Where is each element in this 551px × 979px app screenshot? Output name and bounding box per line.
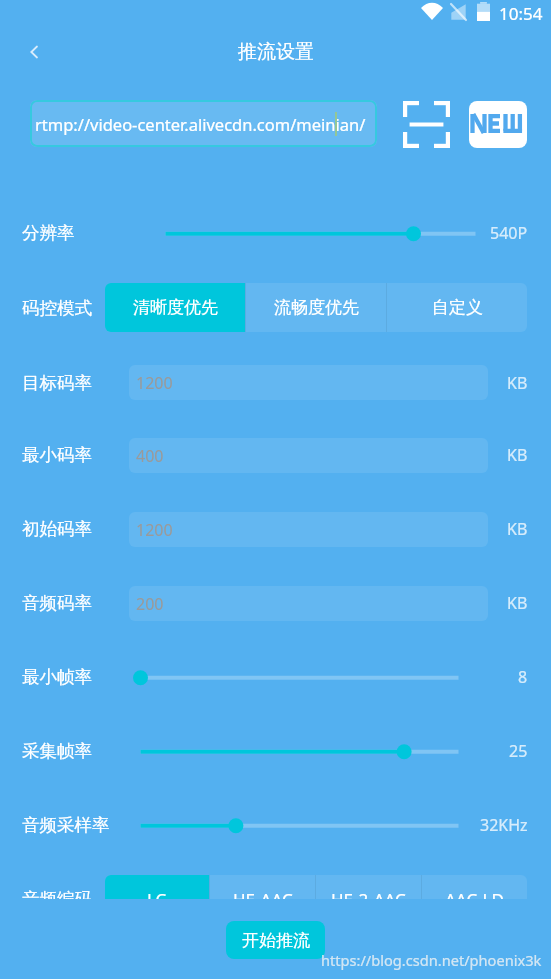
staticText: 开始推流 bbox=[242, 930, 310, 951]
staticText: 最小帧率 bbox=[22, 666, 92, 688]
button[interactable]: rtmp://video-center.alivecdn.com/meinian… bbox=[30, 100, 377, 147]
button[interactable]: LC bbox=[105, 875, 209, 899]
staticText: 采集帧率 bbox=[22, 740, 92, 762]
button[interactable]: 400 bbox=[129, 438, 488, 473]
staticText: 推流设置 bbox=[238, 40, 314, 64]
button[interactable]: Slider bbox=[158, 219, 483, 247]
staticText: 初始码率 bbox=[22, 518, 92, 540]
button[interactable]: 1200 bbox=[129, 512, 488, 547]
staticText: rtmp://video-center.alivecdn.com/meinian… bbox=[35, 113, 366, 135]
staticText: 200 bbox=[136, 593, 164, 615]
staticText: KB bbox=[507, 444, 528, 466]
staticText: 400 bbox=[136, 445, 164, 467]
button[interactable]: HE-AAC bbox=[210, 875, 315, 899]
staticText: AAC-LD bbox=[445, 888, 504, 899]
staticText: 32KHz bbox=[480, 814, 528, 836]
staticText: 码控模式 bbox=[22, 297, 92, 319]
button[interactable]: Slider bbox=[133, 811, 466, 839]
staticText: 自定义 bbox=[432, 297, 483, 318]
staticText: KB bbox=[507, 592, 528, 614]
staticText: 清晰度优先 bbox=[133, 297, 218, 318]
button[interactable]: New bbox=[469, 101, 527, 148]
button[interactable]: 流畅度优先 bbox=[246, 283, 386, 332]
button[interactable]: HE-2-AAC bbox=[316, 875, 421, 899]
button[interactable]: 1200 bbox=[129, 365, 488, 400]
staticText: 音频采样率 bbox=[22, 814, 110, 836]
staticText: https://blog.csdn.net/phoenix3k bbox=[321, 950, 542, 970]
button[interactable]: 200 bbox=[129, 586, 488, 621]
button[interactable]: 清晰度优先 bbox=[105, 283, 245, 332]
staticText: LC bbox=[147, 888, 167, 899]
staticText: 流畅度优先 bbox=[274, 297, 359, 318]
button[interactable]: Scan QR code bbox=[403, 101, 450, 148]
staticText: 音频码率 bbox=[22, 592, 92, 614]
staticText: 8 bbox=[518, 666, 528, 688]
staticText: KB bbox=[507, 372, 528, 394]
staticText: 目标码率 bbox=[22, 372, 92, 394]
staticText: 分辨率 bbox=[22, 222, 75, 244]
button[interactable]: 自定义 bbox=[387, 283, 527, 332]
staticText: KB bbox=[507, 518, 528, 540]
staticText: HE-AAC bbox=[233, 888, 293, 899]
staticText: 音频编码 bbox=[22, 888, 92, 899]
staticText: 10:54 bbox=[499, 2, 543, 25]
staticText: 1200 bbox=[136, 372, 173, 394]
button[interactable]: Back bbox=[18, 34, 54, 70]
staticText: 25 bbox=[509, 740, 528, 762]
button[interactable]: Slider bbox=[133, 737, 466, 765]
staticText: 1200 bbox=[136, 519, 173, 541]
staticText: HE-2-AAC bbox=[331, 888, 406, 899]
button[interactable]: Slider bbox=[133, 663, 466, 691]
staticText: 540P bbox=[490, 222, 528, 244]
button[interactable]: 开始推流 bbox=[226, 921, 325, 959]
button[interactable]: AAC-LD bbox=[422, 875, 527, 899]
staticText: 最小码率 bbox=[22, 444, 92, 466]
